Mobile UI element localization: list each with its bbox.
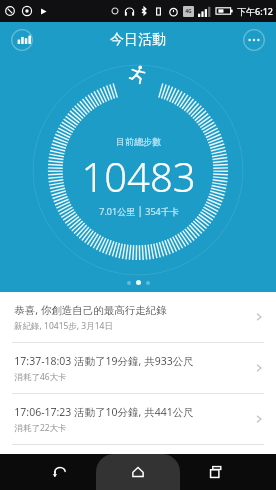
- staticText: 下午6:12: [237, 5, 273, 17]
- button[interactable]: 恭喜, 你創造自己的最高行走紀錄: [0, 292, 276, 342]
- button[interactable]: Back: [42, 454, 78, 490]
- button[interactable]: 17:37-18:03 活動了19分鐘, 共933公尺: [0, 343, 276, 393]
- staticText: 17:06-17:23 活動了10分鐘, 共441公尺: [14, 405, 194, 419]
- staticText: 消耗了22大卡: [14, 422, 67, 434]
- button[interactable]: Statistics: [8, 26, 36, 54]
- staticText: 10483: [81, 149, 196, 203]
- staticText: 7.01公里 │ 354千卡: [99, 205, 179, 217]
- staticText: 4G: [185, 8, 192, 15]
- staticText: 目前總步數: [116, 136, 161, 147]
- staticText: 今日活動: [110, 31, 166, 49]
- staticText: 恭喜, 你創造自己的最高行走紀錄: [14, 303, 167, 317]
- staticText: 新紀錄, 10415步, 3月14日: [14, 320, 113, 332]
- button[interactable]: Recent apps: [198, 454, 234, 490]
- staticText: 17:37-18:03 活動了19分鐘, 共933公尺: [14, 354, 194, 368]
- button[interactable]: Home: [120, 454, 156, 490]
- button[interactable]: More options: [240, 26, 268, 54]
- staticText: 消耗了46大卡: [14, 371, 67, 383]
- button[interactable]: 17:06-17:23 活動了10分鐘, 共441公尺: [0, 394, 276, 444]
